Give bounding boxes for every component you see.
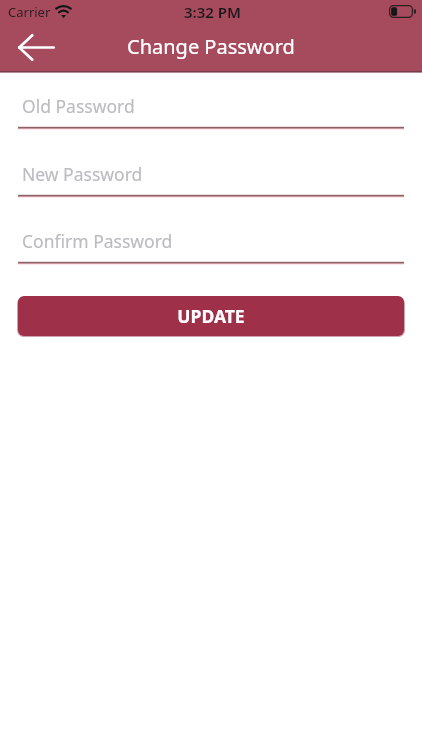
staticText: New Password bbox=[22, 162, 143, 186]
staticText: Old Password bbox=[22, 94, 135, 118]
staticText: Confirm Password bbox=[22, 229, 173, 253]
button[interactable]: Old Password bbox=[18, 94, 404, 130]
button[interactable]: Confirm Password bbox=[18, 229, 404, 265]
staticText: UPDATE bbox=[177, 304, 245, 328]
button[interactable]: Back bbox=[12, 23, 61, 72]
staticText: Carrier bbox=[8, 3, 51, 21]
staticText: Change Password bbox=[127, 33, 295, 60]
button[interactable]: UPDATE bbox=[18, 296, 404, 336]
staticText: 3:32 PM bbox=[184, 2, 241, 22]
button[interactable]: New Password bbox=[18, 162, 404, 198]
